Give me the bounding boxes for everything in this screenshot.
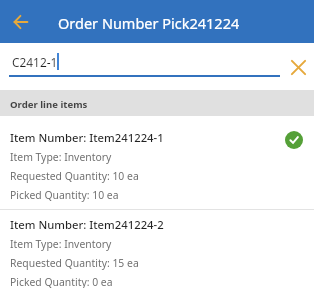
staticText: Picked Quantity: 0 ea bbox=[10, 275, 113, 288]
staticText: Requested Quantity: 10 ea bbox=[10, 169, 139, 183]
staticText: C2412-1 bbox=[12, 54, 58, 70]
staticText: Picked Quantity: 10 ea bbox=[10, 188, 119, 202]
button[interactable]: Back bbox=[5, 6, 37, 38]
staticText: Item Type: Inventory bbox=[10, 237, 112, 251]
staticText: Order line items bbox=[10, 98, 88, 111]
button[interactable]: Item Number: Item241224-1 bbox=[0, 116, 314, 209]
button[interactable]: Item Number: Item241224-2 bbox=[0, 210, 314, 288]
staticText: Requested Quantity: 15 ea bbox=[10, 256, 139, 270]
staticText: Item Number: Item241224-1 bbox=[10, 130, 164, 145]
button[interactable]: Clear text bbox=[283, 52, 313, 82]
staticText: Item Type: Inventory bbox=[10, 150, 112, 164]
staticText: Item Number: Item241224-2 bbox=[10, 217, 164, 232]
other: Picked complete bbox=[285, 131, 303, 149]
staticText: Order Number Pick241224 bbox=[58, 13, 240, 33]
